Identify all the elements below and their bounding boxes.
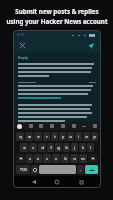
button[interactable]: e	[34, 132, 42, 141]
button[interactable]: r	[43, 132, 50, 141]
button[interactable]	[50, 124, 54, 128]
button[interactable]: Keyboard settings	[17, 124, 22, 129]
button[interactable]: n	[70, 154, 78, 163]
staticText: c	[46, 156, 48, 161]
staticText: a	[23, 145, 26, 150]
button[interactable]: d	[38, 143, 46, 152]
button[interactable]: o	[83, 132, 90, 141]
button[interactable]	[39, 124, 43, 128]
button[interactable]: a	[20, 143, 28, 152]
button[interactable]: z	[26, 154, 33, 163]
button[interactable]: f	[47, 143, 54, 152]
staticText: s	[32, 145, 34, 150]
staticText: g	[57, 145, 60, 150]
button[interactable]	[29, 124, 33, 128]
button[interactable]: w	[25, 132, 33, 141]
staticText: i	[78, 134, 79, 139]
staticText: 3:10	[17, 33, 24, 37]
button[interactable]: c	[43, 154, 51, 163]
button[interactable]: v	[52, 154, 60, 163]
button[interactable]: Send	[86, 41, 96, 51]
staticText: k	[82, 145, 84, 150]
button[interactable]: t	[51, 132, 58, 141]
button[interactable]: ?123	[16, 165, 30, 174]
button[interactable]: Enter	[85, 165, 98, 174]
button[interactable]: Close	[18, 41, 27, 50]
button[interactable]: j	[71, 143, 78, 152]
staticText: Reply	[18, 55, 28, 60]
button[interactable]: h	[63, 143, 70, 152]
staticText: w	[28, 134, 31, 139]
button[interactable]: s	[29, 143, 37, 152]
staticText: using your Hacker News account	[6, 17, 108, 25]
button[interactable]: Recents	[77, 178, 85, 186]
button[interactable]: p	[91, 132, 98, 141]
button[interactable]: b	[61, 154, 69, 163]
button[interactable]: l	[87, 143, 94, 152]
button[interactable]: Home	[53, 178, 61, 186]
staticText: o	[85, 134, 88, 139]
button[interactable]: Back	[30, 178, 38, 186]
button[interactable]: q	[16, 132, 24, 141]
staticText: j	[74, 145, 75, 150]
staticText: h	[65, 145, 68, 150]
staticText: m	[81, 156, 85, 161]
staticText: t	[54, 134, 56, 139]
button[interactable]: Shift	[16, 154, 25, 163]
staticText: ?123	[20, 168, 27, 172]
button[interactable]	[61, 124, 65, 128]
staticText: v	[55, 156, 57, 161]
button[interactable]: .	[77, 165, 84, 174]
button[interactable]: m	[79, 154, 87, 163]
button[interactable]: More options	[93, 124, 97, 128]
button[interactable]: y	[59, 132, 66, 141]
button[interactable]	[72, 124, 76, 128]
staticText: f	[50, 145, 52, 150]
button[interactable]: Emoji	[31, 165, 38, 174]
staticText: n	[73, 156, 76, 161]
button[interactable]: u	[67, 132, 74, 141]
staticText: l	[90, 145, 91, 150]
button[interactable]: k	[79, 143, 86, 152]
staticText: z	[29, 156, 31, 161]
staticText: d	[41, 145, 44, 150]
staticText: e	[37, 134, 40, 139]
staticText: y	[62, 134, 64, 139]
staticText: Submit new posts & replies	[15, 7, 99, 15]
button[interactable]: Backspace	[88, 154, 98, 163]
staticText: p	[93, 134, 96, 139]
staticText: r	[46, 134, 48, 139]
button[interactable]: g	[55, 143, 62, 152]
button[interactable]: Space	[39, 165, 76, 174]
staticText: b	[64, 156, 67, 161]
staticText: q	[19, 134, 22, 139]
button[interactable]: i	[75, 132, 82, 141]
staticText: u	[69, 134, 72, 139]
staticText: .	[80, 168, 81, 172]
button[interactable]: x	[34, 154, 42, 163]
staticText: x	[37, 156, 39, 161]
